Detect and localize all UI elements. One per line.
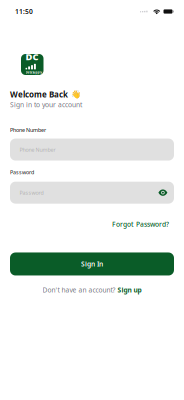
- staticText: Welcome Back: [10, 89, 68, 100]
- staticText: Password: [19, 189, 43, 196]
- staticText: Sign up: [117, 285, 141, 294]
- staticText: Phone Number: [19, 146, 55, 153]
- button[interactable]: Phone Number: [10, 139, 174, 161]
- staticText: 👋: [70, 90, 80, 99]
- staticText: Sign in to your account: [10, 100, 82, 109]
- button[interactable]: Password: [10, 182, 174, 204]
- staticText: Don't have an account?: [42, 285, 117, 294]
- staticText: Sign In: [81, 260, 103, 268]
- staticText: Phone Number: [10, 126, 46, 134]
- staticText: DC: [26, 50, 39, 63]
- button[interactable]: Sign up: [117, 285, 141, 294]
- staticText: Forgot Password?: [112, 220, 169, 228]
- staticText: DataSupply: [26, 71, 43, 74]
- staticText: Password: [10, 169, 34, 176]
- button[interactable]: Forgot Password?: [112, 220, 169, 228]
- staticText: 11:50: [15, 7, 33, 16]
- button[interactable]: Sign In: [10, 252, 174, 275]
